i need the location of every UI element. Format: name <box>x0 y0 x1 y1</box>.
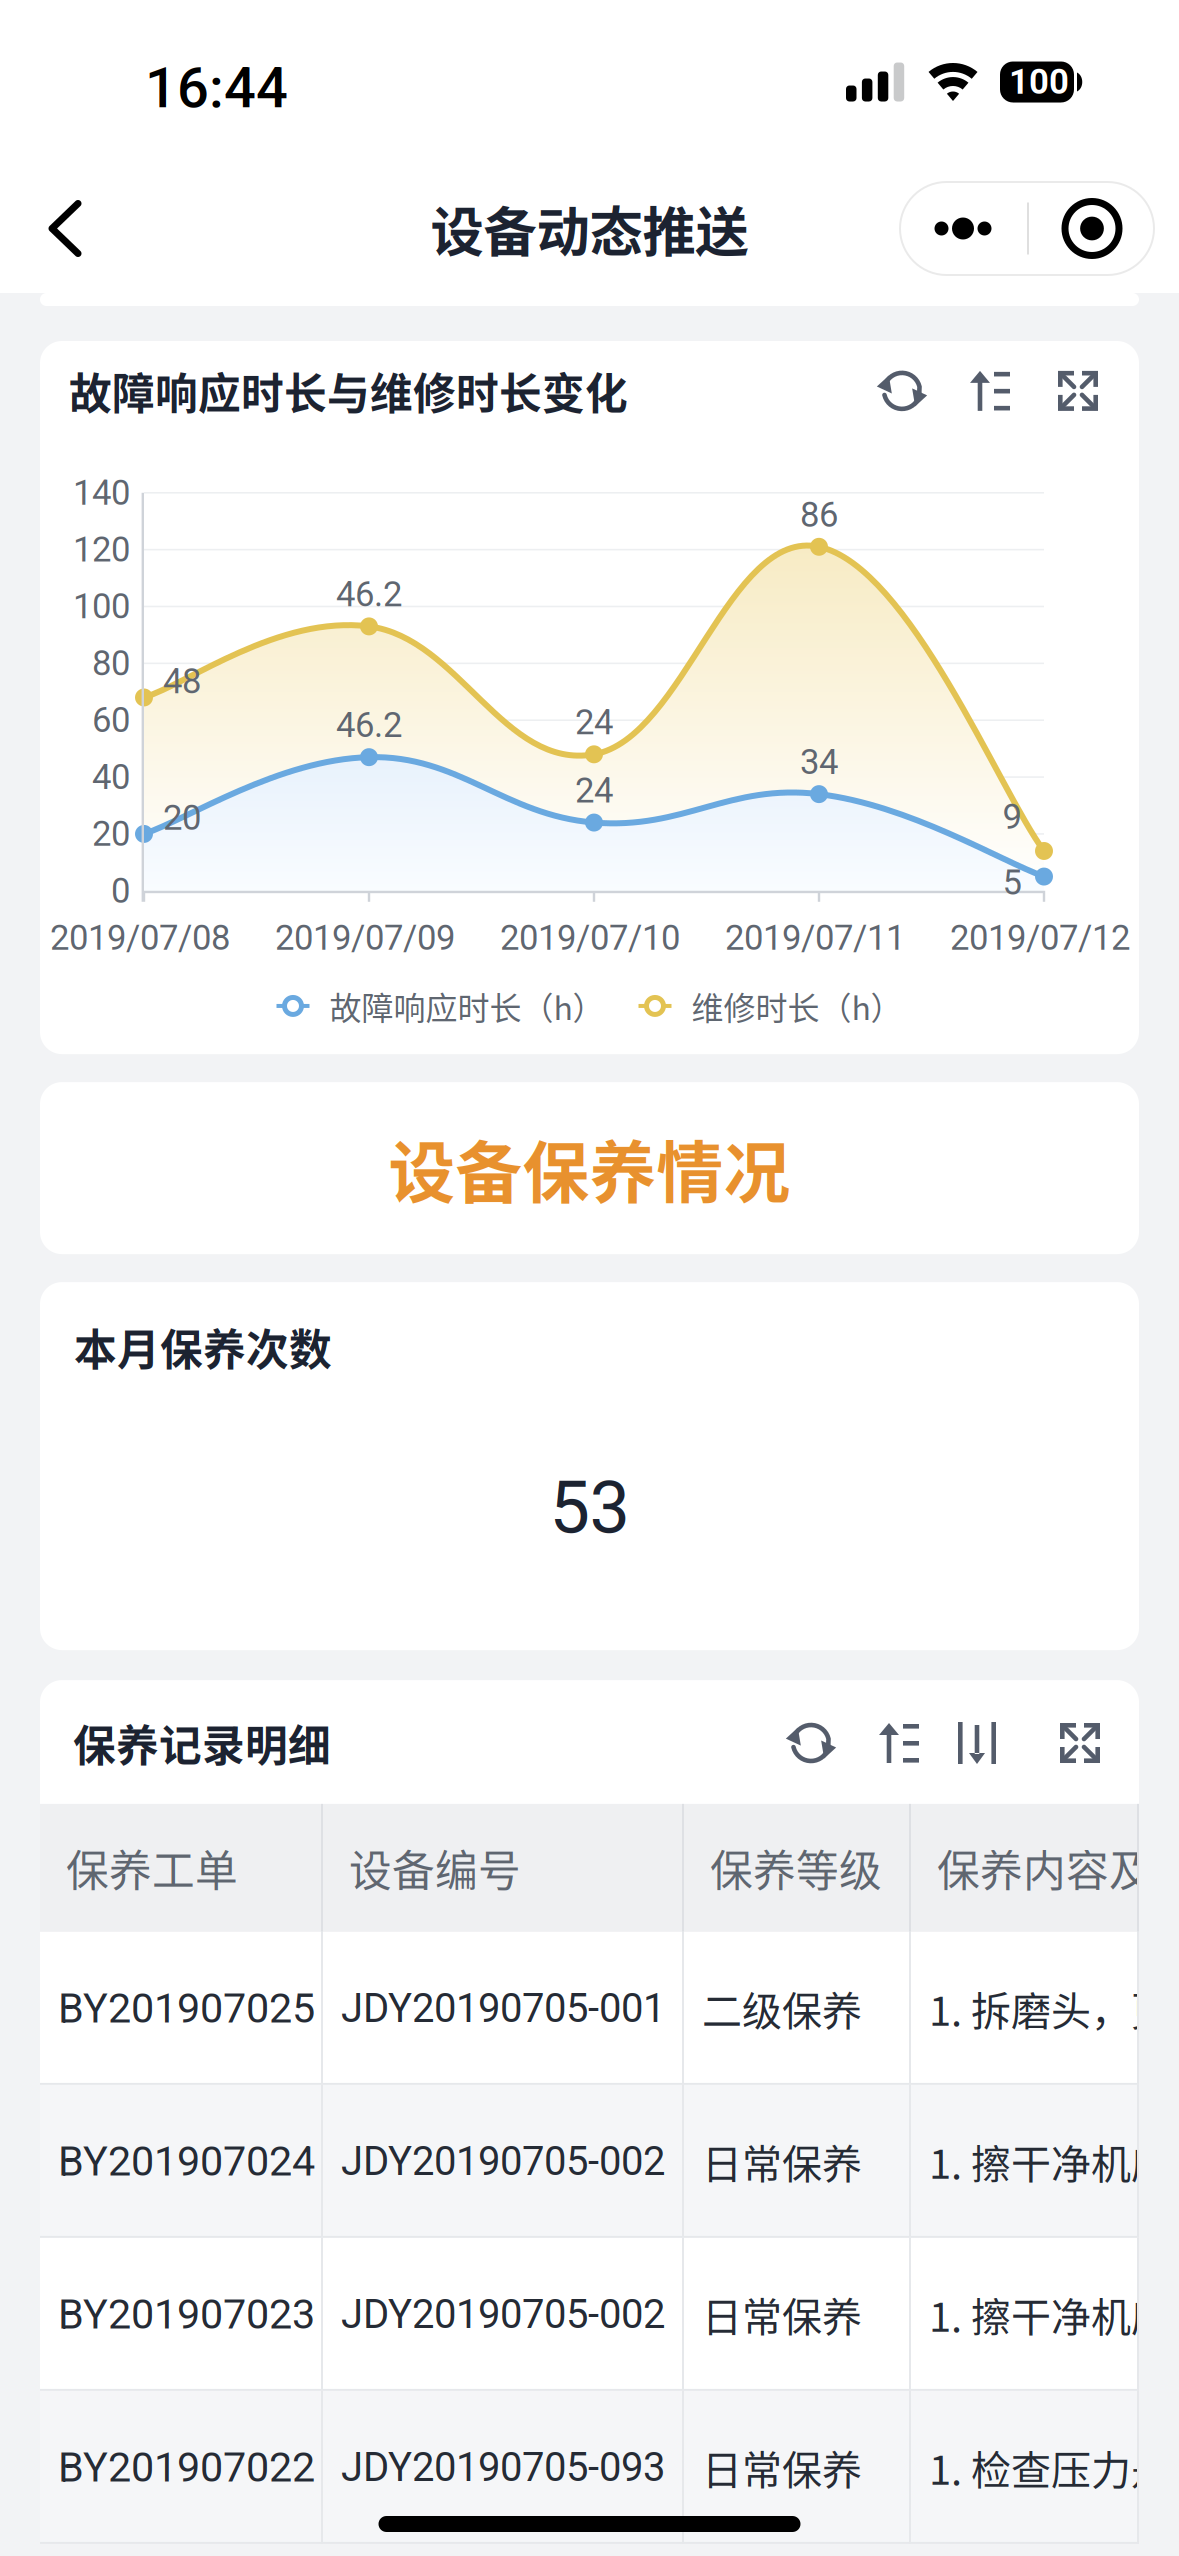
staticText: 140 <box>73 472 130 513</box>
staticText: 80 <box>92 643 130 684</box>
staticText: 二级保养 <box>702 1979 862 2037</box>
staticText: BY201907024 <box>58 2137 315 2186</box>
staticText: 1. 擦干净机床上 <box>929 2132 1179 2190</box>
staticText: 40 <box>92 757 130 797</box>
staticText: 24 <box>575 702 613 743</box>
staticText: 120 <box>73 529 130 570</box>
staticText: JDY20190705-001 <box>341 1985 665 2032</box>
button[interactable]: 全屏 <box>1036 1723 1120 1763</box>
staticText: JDY20190705-002 <box>341 2138 665 2185</box>
staticText: 日常保养 <box>702 2285 862 2343</box>
button[interactable]: 刷新 <box>767 1721 855 1765</box>
staticText: 2019/07/10 <box>500 917 680 958</box>
staticText: 86 <box>800 494 838 535</box>
staticText: 0 <box>111 870 130 911</box>
staticText: 故障响应时长与维修时长变化 <box>69 360 628 422</box>
staticText: JDY20190705-093 <box>341 2444 665 2491</box>
staticText: 16:44 <box>145 55 288 121</box>
staticText: 本月保养次数 <box>74 1316 332 1378</box>
button[interactable]: 全屏 <box>1034 371 1118 411</box>
staticText: 1. 检查压力是否 <box>929 2438 1179 2496</box>
button[interactable]: 返回 <box>0 173 122 283</box>
staticText: 20 <box>163 798 201 838</box>
button[interactable]: 刷新 <box>858 369 946 413</box>
staticText: 46.2 <box>336 705 402 745</box>
button[interactable]: 列设置 <box>943 1722 1036 1764</box>
staticText: 1. 擦干净机床上 <box>929 2285 1179 2343</box>
staticText: 1. 拆磨头，更换 <box>929 1979 1179 2037</box>
staticText: 60 <box>92 700 130 740</box>
staticText: 保养记录明细 <box>73 1712 331 1774</box>
staticText: 2019/07/12 <box>950 917 1130 958</box>
staticText: 设备编号 <box>349 1837 521 1899</box>
staticText: 2019/07/08 <box>50 917 230 958</box>
staticText: 日常保养 <box>702 2438 862 2496</box>
staticText: 维修时长（h） <box>691 983 902 1029</box>
staticText: JDY20190705-002 <box>341 2291 665 2338</box>
staticText: 设备动态推送 <box>430 190 748 267</box>
staticText: 9 <box>1002 797 1021 837</box>
staticText: 日常保养 <box>702 2132 862 2190</box>
staticText: BY201907022 <box>58 2443 315 2492</box>
staticText: 保养内容及 <box>937 1837 1152 1899</box>
staticText: 20 <box>92 814 130 854</box>
button[interactable]: 排序 <box>855 1723 943 1763</box>
staticText: 保养等级 <box>710 1837 882 1899</box>
staticText: 100 <box>73 586 130 627</box>
button[interactable]: 菜单 <box>899 181 1027 276</box>
staticText: 2019/07/11 <box>725 917 905 958</box>
staticText: 48 <box>163 661 201 702</box>
staticText: 100 <box>1009 62 1069 102</box>
staticText: 5 <box>1002 862 1021 903</box>
staticText: 34 <box>800 742 838 782</box>
button[interactable]: 排序 <box>946 371 1034 411</box>
staticText: BY201907023 <box>58 2290 315 2339</box>
staticText: 故障响应时长（h） <box>329 983 604 1029</box>
staticText: 2019/07/09 <box>275 917 455 958</box>
button[interactable]: 关闭 <box>1029 181 1155 276</box>
staticText: 保养工单 <box>66 1837 238 1899</box>
staticText: 24 <box>575 770 613 811</box>
staticText: BY201907025 <box>58 1984 315 2033</box>
staticText: 53 <box>549 1466 629 1550</box>
staticText: 设备保养情况 <box>388 1120 790 1216</box>
staticText: 46.2 <box>336 574 402 615</box>
